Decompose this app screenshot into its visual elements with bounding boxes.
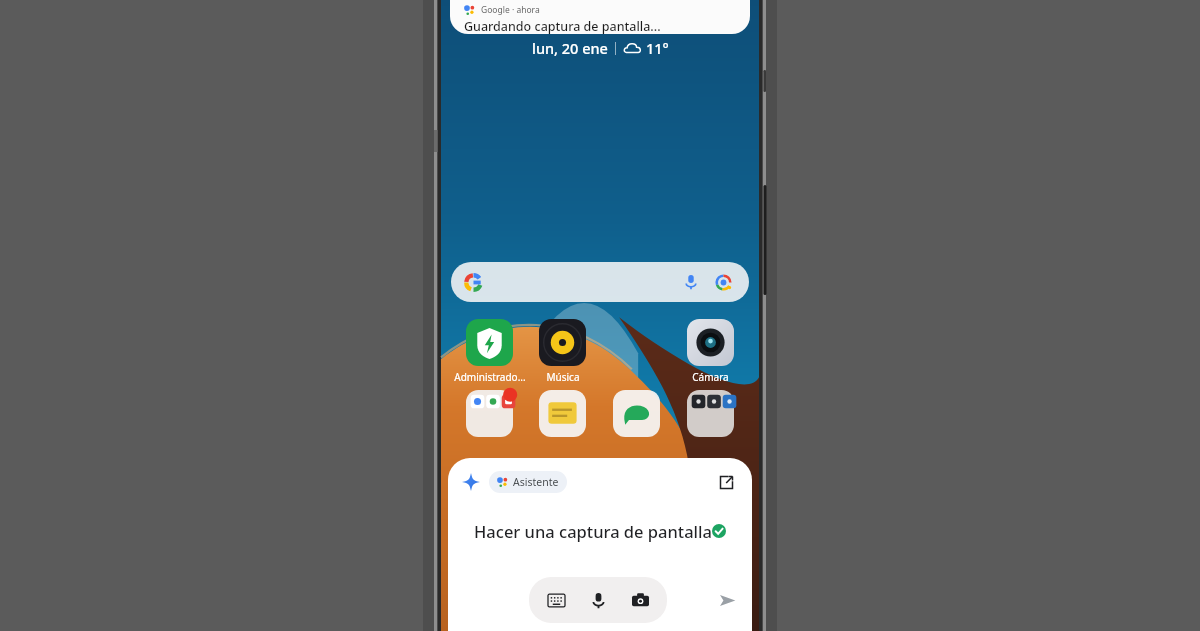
button[interactable]: Aplicación [453,390,526,437]
button[interactable]: Cámara [625,585,655,615]
staticText: Hacer una captura de pantalla [474,520,712,542]
button[interactable]: Asistente [489,471,567,493]
staticText: Asistente [513,475,559,489]
button[interactable]: Cámara [673,319,747,384]
staticText: Música [546,370,580,384]
staticText: 11° [646,38,669,58]
staticText: Google · ahora [481,4,540,16]
button[interactable]: Micrófono [583,585,613,615]
button[interactable]: Aplicación [599,390,673,437]
button[interactable]: Música [526,319,599,384]
staticText: Guardando captura de pantalla... [464,18,661,34]
button[interactable]: Enviar [712,585,742,615]
button[interactable]: Aplicación [673,390,747,437]
staticText: lun, 20 ene [532,38,608,58]
button[interactable]: Google · ahora [450,0,750,34]
button[interactable]: Búsqueda por voz [451,262,749,302]
button[interactable]: Abrir en otra app [714,470,738,494]
button[interactable]: Administrado... [453,319,526,384]
button[interactable]: Aplicación [526,390,599,437]
button[interactable]: Búsqueda por voz [678,269,704,295]
staticText: Administrado... [454,370,526,384]
staticText: Cámara [692,370,729,384]
button[interactable]: Teclado [541,585,571,615]
button[interactable]: Google Lens [710,269,736,295]
